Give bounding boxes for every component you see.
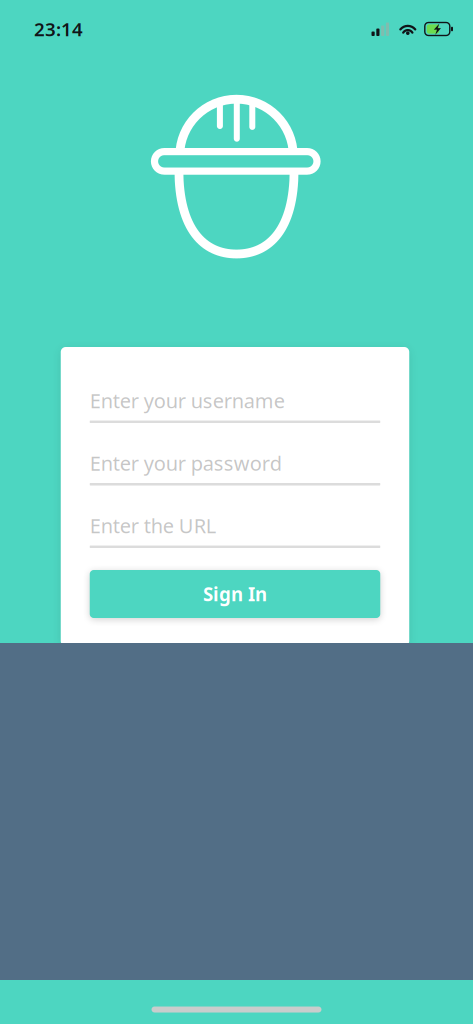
button[interactable]: Enter the URL (90, 512, 380, 548)
button[interactable]: Enter your password (90, 450, 380, 485)
staticText: Enter the URL (90, 512, 216, 539)
staticText: Enter your username (90, 387, 285, 414)
staticText: Sign In (203, 582, 267, 606)
button[interactable]: Sign In (90, 570, 380, 618)
button[interactable]: Enter your username (90, 387, 380, 423)
staticText: Enter your password (90, 450, 282, 476)
staticText: 23:14 (34, 17, 83, 41)
